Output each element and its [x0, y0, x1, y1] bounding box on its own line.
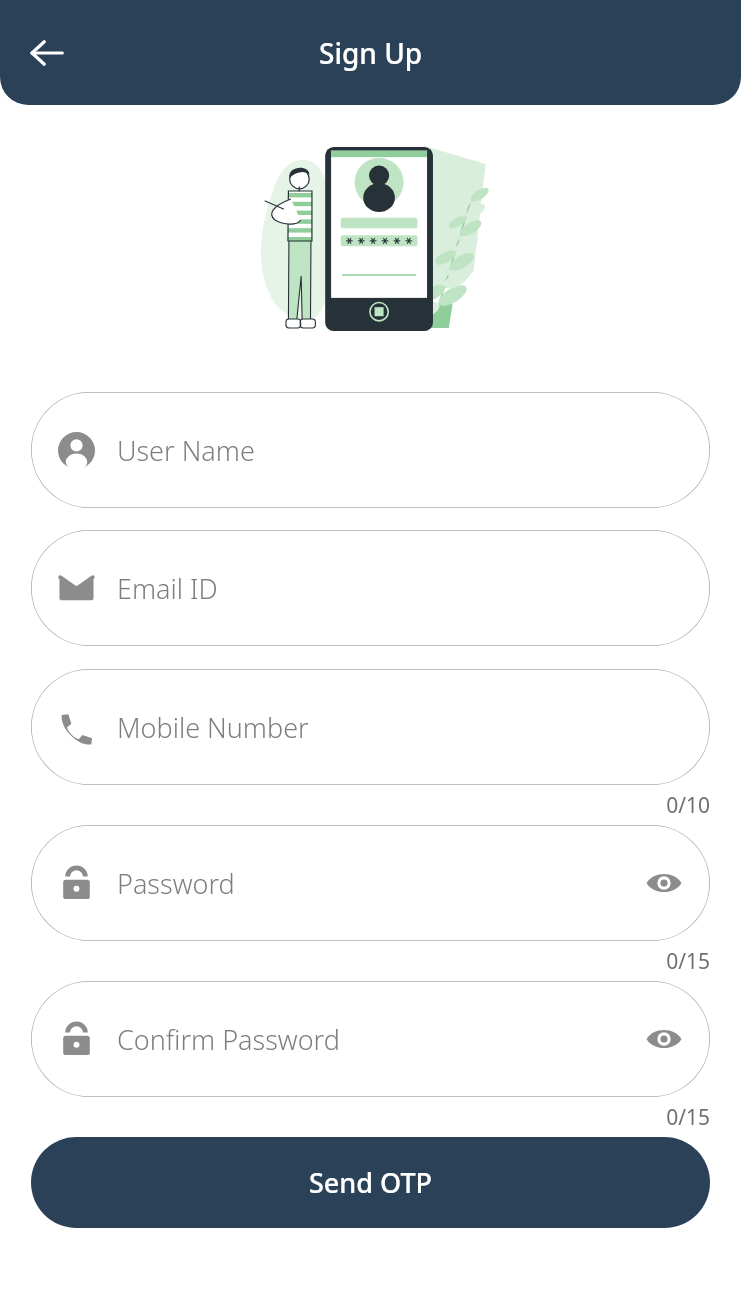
- staticText: 0/10: [0, 791, 710, 820]
- staticText: Send OTP: [309, 1164, 433, 1201]
- button[interactable]: Send OTP: [31, 1137, 710, 1228]
- button[interactable]: Email ID: [31, 530, 710, 646]
- button[interactable]: Show password: [640, 1015, 688, 1063]
- button[interactable]: Back: [18, 24, 76, 82]
- button[interactable]: User Name: [31, 392, 710, 508]
- button[interactable]: Password: [31, 825, 710, 941]
- staticText: Password: [117, 865, 235, 902]
- button[interactable]: Mobile Number: [31, 669, 710, 785]
- staticText: 0/15: [0, 1103, 710, 1132]
- staticText: Confirm Password: [117, 1021, 340, 1058]
- staticText: Email ID: [117, 570, 218, 607]
- staticText: Mobile Number: [117, 709, 309, 746]
- staticText: User Name: [117, 432, 255, 469]
- staticText: Sign Up: [319, 34, 423, 72]
- button[interactable]: Confirm Password: [31, 981, 710, 1097]
- staticText: 0/15: [0, 947, 710, 976]
- button[interactable]: Show password: [640, 859, 688, 907]
